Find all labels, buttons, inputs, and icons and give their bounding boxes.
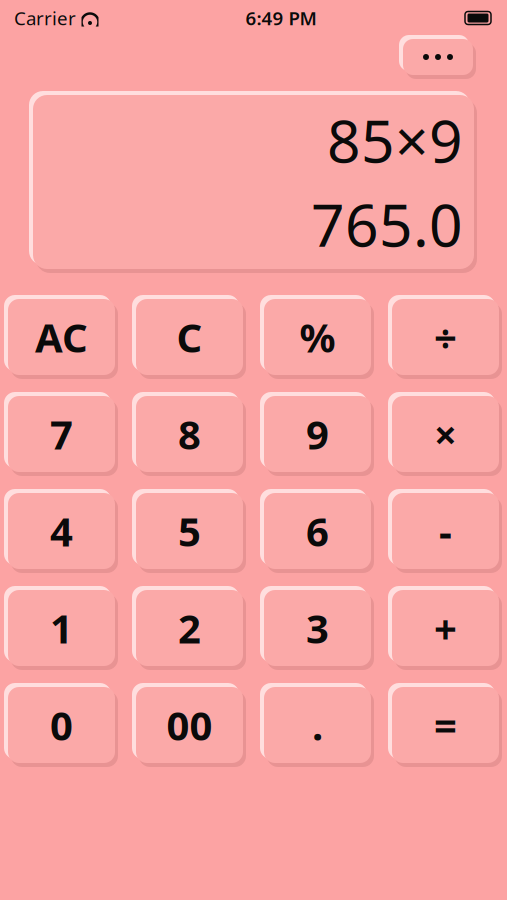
staticText: 7 <box>50 407 73 460</box>
button[interactable]: 4 <box>8 493 115 569</box>
staticText: 85×9 <box>327 101 463 179</box>
button[interactable]: + <box>392 590 499 666</box>
button[interactable]: AC <box>8 299 115 375</box>
button[interactable]: . <box>264 687 371 763</box>
button[interactable]: 7 <box>8 396 115 472</box>
staticText: 6 <box>306 504 329 557</box>
staticText: 8 <box>178 407 201 460</box>
staticText: 1 <box>50 601 73 654</box>
button[interactable]: × <box>392 396 499 472</box>
button[interactable]: 1 <box>8 590 115 666</box>
staticText: 5 <box>178 504 201 557</box>
staticText: 6:49 PM <box>245 6 316 30</box>
button[interactable]: 5 <box>136 493 243 569</box>
button[interactable]: 00 <box>136 687 243 763</box>
staticText: 00 <box>166 698 212 751</box>
staticText: 4 <box>50 504 73 557</box>
button[interactable]: = <box>392 687 499 763</box>
staticText: - <box>439 504 452 557</box>
staticText: 3 <box>306 601 329 654</box>
staticText: × <box>434 407 457 460</box>
staticText: . <box>312 698 323 751</box>
button[interactable]: 6 <box>264 493 371 569</box>
staticText: AC <box>35 310 88 363</box>
button[interactable]: 8 <box>136 396 243 472</box>
button[interactable]: 0 <box>8 687 115 763</box>
staticText: Carrier <box>14 6 76 30</box>
button[interactable]: 9 <box>264 396 371 472</box>
staticText: 765.0 <box>311 185 463 263</box>
button[interactable]: 2 <box>136 590 243 666</box>
button[interactable]: More options <box>403 39 473 75</box>
staticText: C <box>176 310 202 363</box>
staticText: 9 <box>306 407 329 460</box>
staticText: ÷ <box>434 310 457 363</box>
button[interactable]: 3 <box>264 590 371 666</box>
button[interactable]: ÷ <box>392 299 499 375</box>
staticText: 0 <box>50 698 73 751</box>
button[interactable]: C <box>136 299 243 375</box>
button[interactable]: % <box>264 299 371 375</box>
button[interactable]: - <box>392 493 499 569</box>
staticText: % <box>299 310 335 363</box>
staticText: 2 <box>178 601 201 654</box>
staticText: = <box>434 698 457 751</box>
staticText: + <box>434 601 457 654</box>
